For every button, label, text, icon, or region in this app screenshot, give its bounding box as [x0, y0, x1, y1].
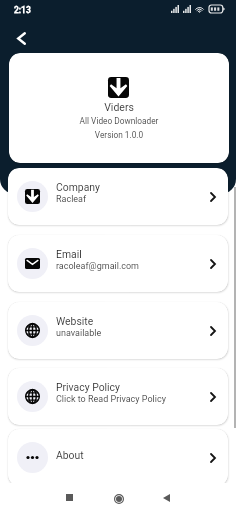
- staticText: racoleaf@gmail.com: [56, 261, 140, 272]
- staticText: 2:13: [14, 5, 31, 15]
- button[interactable]: Home: [107, 487, 130, 510]
- button[interactable]: About: [8, 429, 228, 486]
- button[interactable]: Back: [7, 24, 35, 52]
- button[interactable]: Recents: [58, 486, 81, 509]
- button[interactable]: Privacy Policy: [8, 368, 228, 425]
- staticText: Email: [56, 248, 82, 260]
- staticText: Privacy Policy: [56, 381, 120, 393]
- staticText: About: [56, 449, 84, 461]
- button[interactable]: Website: [8, 302, 228, 359]
- staticText: Company: [56, 181, 100, 193]
- staticText: Racleaf: [56, 194, 87, 205]
- staticText: Click to Read Privacy Policy: [56, 394, 166, 405]
- button[interactable]: Company: [8, 168, 228, 225]
- staticText: Version 1.0.0: [9, 130, 229, 140]
- staticText: Viders: [9, 101, 229, 113]
- staticText: All Video Downloader: [9, 116, 229, 126]
- staticText: Website: [56, 315, 94, 327]
- button[interactable]: Back: [155, 486, 178, 509]
- staticText: unavailable: [56, 328, 102, 339]
- button[interactable]: Email: [8, 235, 228, 292]
